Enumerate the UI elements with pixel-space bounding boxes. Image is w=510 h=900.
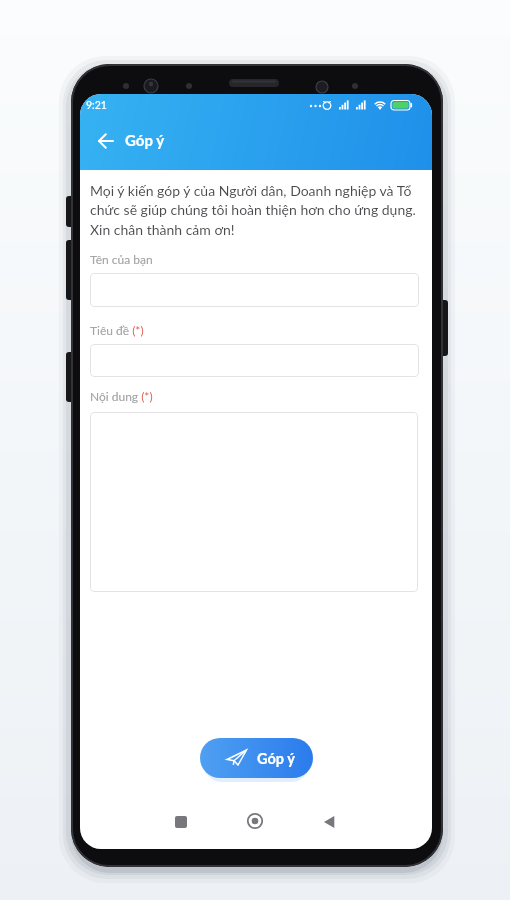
button[interactable] [316, 809, 342, 835]
button[interactable] [168, 809, 194, 835]
button[interactable] [242, 808, 268, 834]
staticText: Tên của bạn [90, 252, 153, 266]
staticText: Tiêu đề (*) [90, 323, 144, 337]
button[interactable] [90, 412, 418, 592]
staticText: 9:21 [86, 99, 107, 112]
staticText: Nội dung (*) [90, 389, 153, 403]
button[interactable] [90, 273, 419, 307]
staticText: Mọi ý kiến góp ý của Người dân, Doanh ng… [90, 182, 430, 238]
staticText: Góp ý [125, 131, 165, 149]
button[interactable] [90, 344, 419, 377]
button[interactable]: Góp ý [200, 738, 313, 778]
button[interactable] [90, 125, 122, 157]
staticText: Góp ý [257, 750, 295, 767]
